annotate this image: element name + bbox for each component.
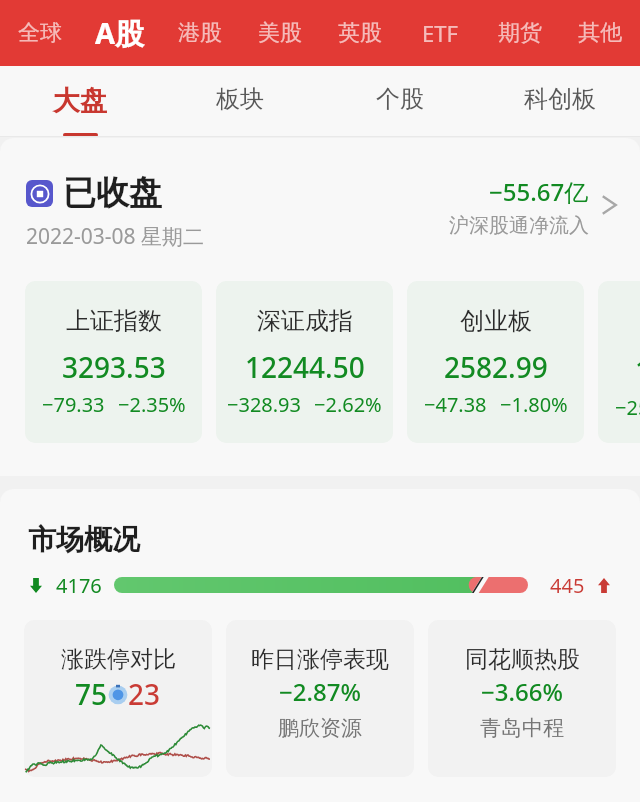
staticText: ETF [422, 18, 458, 48]
staticText: 市场概况 [28, 522, 140, 557]
staticText: −25.15 [615, 394, 640, 421]
button[interactable]: 港股 [160, 0, 240, 66]
staticText: 上证指数 [66, 306, 162, 336]
button[interactable]: 已收盘 [26, 172, 622, 251]
button[interactable]: 创业板 [407, 281, 584, 443]
staticText: 青岛中程 [480, 715, 564, 741]
staticText: 大盘 [53, 84, 107, 118]
staticText: 创业板 [460, 306, 532, 336]
staticText: 沪深股通净流入 [449, 213, 589, 238]
staticText: 英股 [338, 19, 382, 47]
button[interactable]: 全球 [0, 0, 80, 66]
button[interactable]: 期货 [480, 0, 560, 66]
button[interactable]: 上证指数 [25, 281, 202, 443]
button[interactable]: 大盘 [0, 66, 160, 137]
staticText: 445 [550, 572, 585, 599]
staticText: 4176 [56, 572, 102, 599]
button[interactable]: 涨跌停对比 [24, 620, 212, 777]
staticText: 个股 [376, 84, 424, 114]
staticText: 板块 [216, 84, 264, 114]
other: More details [596, 192, 622, 218]
staticText: 75 [75, 675, 108, 713]
button[interactable]: 同花顺热股 [428, 620, 616, 777]
staticText: −2.87% [279, 675, 361, 708]
button[interactable]: 科创板 [480, 66, 640, 137]
staticText: 美股 [258, 19, 302, 47]
staticText: −328.93 [227, 391, 301, 418]
button[interactable]: 昨日涨停表现 [226, 620, 414, 777]
staticText: 港股 [178, 19, 222, 47]
staticText: 23 [128, 675, 161, 713]
button[interactable]: ETF [400, 0, 480, 66]
staticText: 全球 [18, 19, 62, 47]
staticText: 2582.99 [444, 348, 548, 386]
staticText: 鹏欣资源 [278, 715, 362, 741]
staticText: 深证成指 [257, 306, 353, 336]
staticText: −2.35% [118, 391, 186, 418]
staticText: −1.80% [500, 391, 568, 418]
staticText: 期货 [498, 19, 542, 47]
button[interactable]: 其他 [560, 0, 640, 66]
button[interactable]: 深证成指 [216, 281, 393, 443]
staticText: 涨跌停对比 [61, 645, 176, 674]
staticText: −79.33 [42, 391, 105, 418]
button[interactable]: 个股 [320, 66, 480, 137]
button[interactable]: 英股 [320, 0, 400, 66]
staticText: 1106.24 [635, 351, 640, 389]
staticText: 同花顺热股 [465, 645, 580, 674]
staticText: 2022-03-08 星期二 [26, 222, 205, 251]
button[interactable]: A股 [80, 0, 160, 66]
staticText: 昨日涨停表现 [251, 645, 389, 674]
staticText: −55.67亿 [489, 175, 589, 208]
button[interactable]: 板块 [160, 66, 320, 137]
button[interactable]: 科创50 [598, 281, 640, 443]
staticText: −47.38 [424, 391, 487, 418]
staticText: 科创板 [524, 84, 596, 114]
staticText: 12244.50 [245, 348, 365, 386]
staticText: −3.66% [481, 675, 563, 708]
staticText: 已收盘 [63, 172, 162, 214]
staticText: 3293.53 [62, 348, 166, 386]
button[interactable]: 美股 [240, 0, 320, 66]
staticText: 其他 [578, 19, 622, 47]
staticText: A股 [95, 13, 145, 53]
staticText: −2.62% [314, 391, 382, 418]
